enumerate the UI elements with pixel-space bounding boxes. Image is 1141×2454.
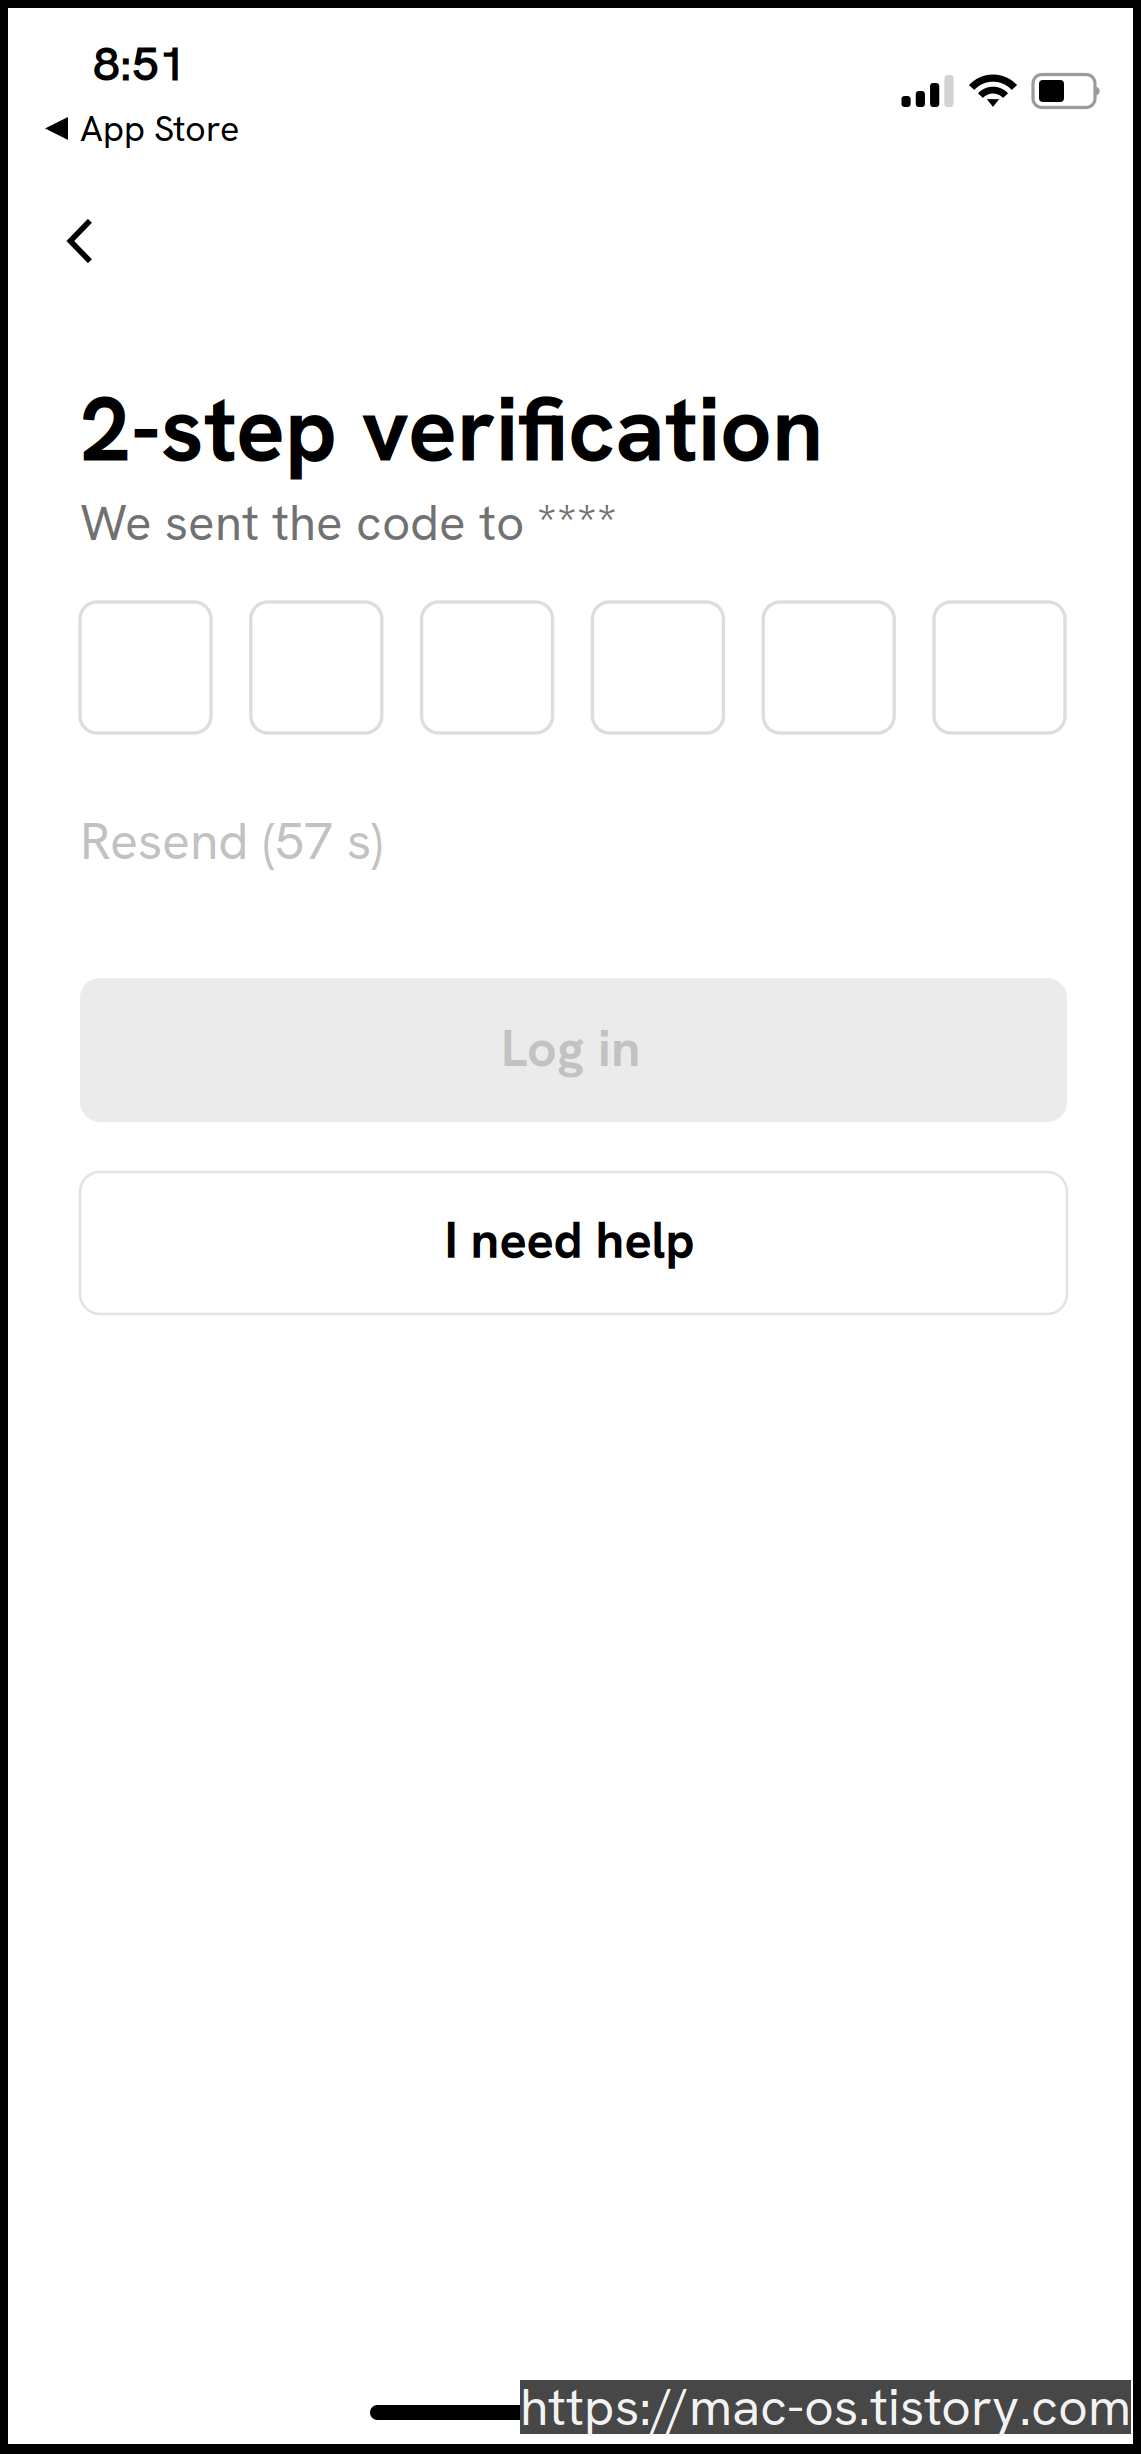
button[interactable]: App Store — [8, 104, 1133, 145]
button[interactable]: Log in — [80, 978, 1067, 1122]
button[interactable]: Back — [41, 202, 119, 280]
button[interactable]: I need help — [80, 1172, 1067, 1314]
staticText: https://mac-os.tistory.com — [520, 2373, 1131, 2441]
staticText: We sent the code to **** — [80, 491, 617, 555]
button[interactable]: Resend (57 s) — [8, 733, 1133, 869]
staticText: Resend (57 s) — [80, 807, 383, 875]
staticText: Log in — [501, 1014, 640, 1082]
staticText: 8:51 — [93, 32, 186, 95]
staticText: 2-step verification — [80, 370, 823, 488]
staticText: App Store — [80, 105, 239, 152]
staticText: I need help — [444, 1207, 694, 1273]
